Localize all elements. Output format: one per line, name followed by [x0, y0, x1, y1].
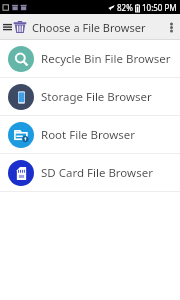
button[interactable]: Open navigation drawer: [2, 18, 28, 36]
staticText: SD Card File Browser: [41, 165, 153, 181]
button[interactable]: Recycle Bin File Browser: [0, 40, 180, 77]
button[interactable]: SD Card File Browser: [0, 154, 180, 191]
staticText: 10:50 PM: [142, 2, 177, 13]
button[interactable]: Storage File Browser: [0, 78, 180, 115]
staticText: 82%: [117, 2, 133, 13]
staticText: Storage File Browser: [41, 89, 152, 105]
staticText: Choose a File Browser: [32, 20, 146, 35]
button[interactable]: Root File Browser: [0, 116, 180, 153]
button[interactable]: More options: [162, 14, 180, 40]
staticText: Recycle Bin File Browser: [41, 51, 171, 67]
staticText: Root File Browser: [41, 127, 136, 143]
